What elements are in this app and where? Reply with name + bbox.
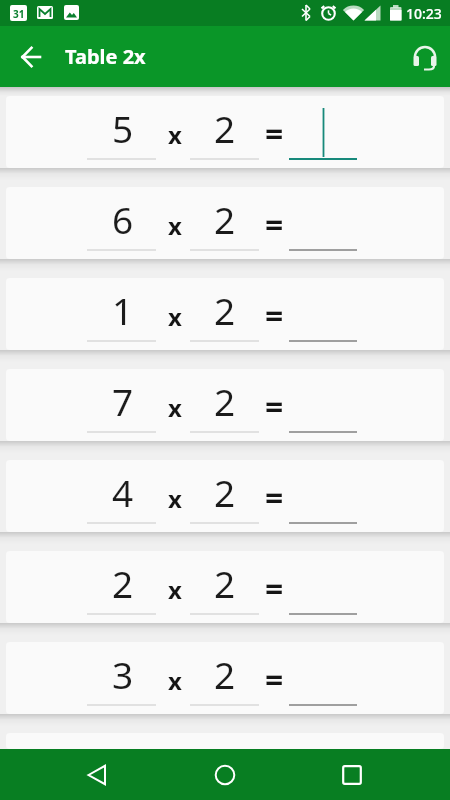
staticText: =	[265, 476, 284, 520]
button[interactable]: 5	[6, 96, 444, 168]
staticText: 2	[214, 285, 236, 333]
staticText: 31	[13, 7, 25, 21]
staticText: 2	[214, 649, 236, 697]
staticText: 6	[112, 194, 134, 242]
staticText: 4	[112, 467, 134, 515]
staticText: 2	[214, 376, 236, 424]
button[interactable]: 6	[6, 187, 444, 259]
staticText: 2	[214, 103, 236, 151]
button[interactable]	[328, 749, 376, 800]
button[interactable]: 3	[6, 642, 444, 714]
staticText: 3	[112, 649, 134, 697]
staticText: =	[265, 203, 284, 247]
staticText: 7	[112, 376, 134, 424]
staticText: x	[168, 391, 182, 424]
button[interactable]: 1	[6, 278, 444, 350]
button[interactable]	[73, 749, 121, 800]
staticText: x	[168, 118, 182, 151]
button[interactable]	[9, 35, 53, 79]
button[interactable]	[405, 37, 445, 77]
button[interactable]	[201, 749, 249, 800]
staticText: x	[168, 573, 182, 606]
staticText: =	[265, 567, 284, 611]
staticText: 2	[112, 558, 134, 606]
staticText: =	[265, 294, 284, 338]
staticText: =	[265, 658, 284, 702]
staticText: x	[168, 300, 182, 333]
staticText: 10:23	[406, 4, 442, 23]
staticText: =	[265, 112, 284, 156]
button[interactable]: 7	[6, 369, 444, 441]
staticText: 2	[214, 558, 236, 606]
staticText: x	[168, 209, 182, 242]
button[interactable]: 2	[6, 551, 444, 623]
staticText: x	[168, 664, 182, 697]
staticText: =	[265, 385, 284, 429]
staticText: x	[168, 482, 182, 515]
staticText: 2	[214, 467, 236, 515]
staticText: 1	[112, 285, 134, 333]
staticText: Table 2x	[65, 43, 146, 70]
staticText: 5	[112, 103, 134, 151]
button[interactable]: 4	[6, 460, 444, 532]
staticText: 2	[214, 194, 236, 242]
